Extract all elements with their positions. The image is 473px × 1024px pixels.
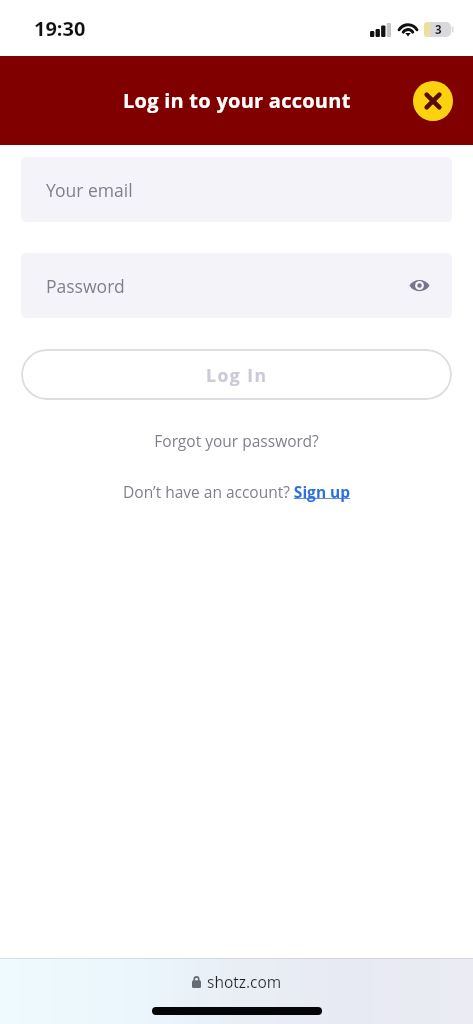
button[interactable]: Don’t have an account? Sign up (0, 481, 473, 502)
button[interactable]: Password (21, 253, 452, 318)
staticText: Log In (206, 363, 268, 387)
staticText: 19:30 (34, 15, 86, 42)
staticText: Your email (46, 178, 133, 202)
staticText: shotz.com (207, 971, 282, 992)
staticText: 3 (435, 22, 442, 37)
button[interactable]: Close (413, 81, 453, 121)
button[interactable]: Your email (21, 157, 452, 222)
staticText: Log in to your account (123, 87, 351, 114)
button[interactable]: Log In (21, 349, 452, 400)
staticText: Don’t have an account? Sign up (123, 481, 351, 502)
button[interactable]: shotz.com (192, 971, 282, 992)
button[interactable]: Forgot your password? (0, 428, 473, 453)
button[interactable]: Show password (404, 271, 434, 301)
staticText: Password (46, 274, 125, 298)
